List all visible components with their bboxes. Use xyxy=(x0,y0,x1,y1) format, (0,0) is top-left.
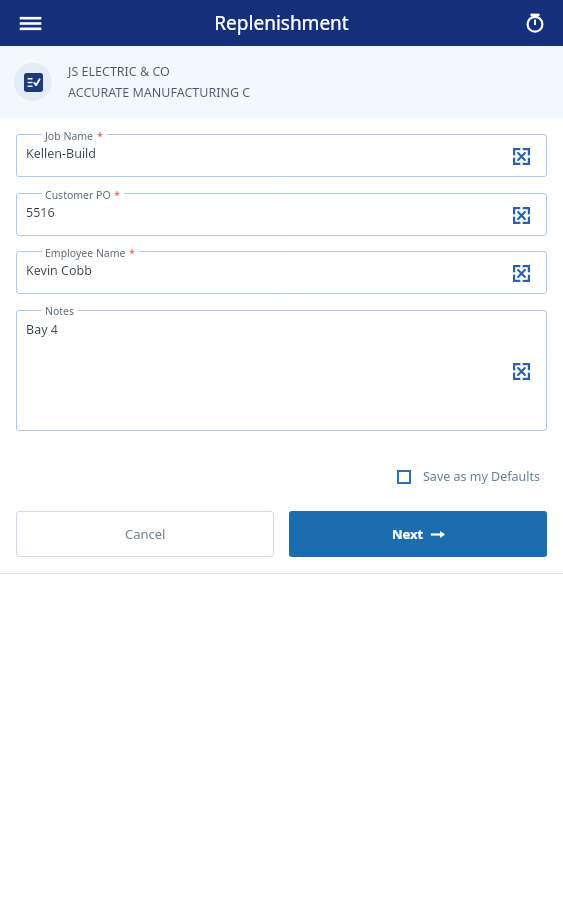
staticText: * xyxy=(97,128,104,143)
button[interactable]: 5516 xyxy=(16,193,547,236)
staticText: Employee Name xyxy=(45,246,126,260)
staticText: Cancel xyxy=(125,525,166,543)
staticText: Kellen-Build xyxy=(26,145,97,162)
button[interactable]: Next xyxy=(289,511,547,557)
staticText: Kevin Cobb xyxy=(26,262,92,279)
staticText: Job Name xyxy=(45,129,94,143)
button[interactable]: Timer xyxy=(519,7,551,39)
button[interactable]: Scan Employee Name xyxy=(507,259,535,287)
staticText: Customer PO xyxy=(45,188,111,202)
staticText: JS ELECTRIC & CO xyxy=(68,63,170,80)
button[interactable]: Scan Notes xyxy=(507,357,535,385)
staticText: Bay 4 xyxy=(26,321,58,338)
button[interactable]: Bay 4 xyxy=(16,310,547,431)
staticText: * xyxy=(114,187,121,202)
staticText: 5516 xyxy=(26,204,55,221)
staticText: Next xyxy=(392,525,424,543)
button[interactable]: Cancel xyxy=(16,511,274,557)
staticText: Save as my Defaults xyxy=(423,468,541,485)
button[interactable]: Kevin Cobb xyxy=(16,251,547,294)
button[interactable]: Scan Customer PO xyxy=(507,201,535,229)
staticText: Replenishment xyxy=(214,10,349,36)
button[interactable]: Kellen-Build xyxy=(16,134,547,177)
button[interactable]: Save as my Defaults xyxy=(397,464,541,489)
staticText: Notes xyxy=(45,304,75,318)
button[interactable]: Menu xyxy=(14,7,46,39)
staticText: * xyxy=(129,245,136,260)
button[interactable]: Scan Job Name xyxy=(507,142,535,170)
staticText: ACCURATE MANUFACTURING C xyxy=(68,84,251,101)
